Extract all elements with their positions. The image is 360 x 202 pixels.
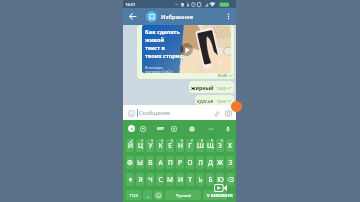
staticText: Б — [208, 175, 213, 184]
button[interactable]: Emoji — [126, 108, 136, 118]
staticText: Р — [178, 158, 182, 167]
staticText: Ж — [217, 158, 223, 167]
staticText: Избранное — [161, 13, 194, 21]
staticText: Ш — [197, 141, 204, 150]
staticText: 4 — [161, 139, 163, 143]
staticText: Щ — [207, 141, 214, 150]
button[interactable]: М — [166, 173, 174, 186]
staticText: А — [158, 158, 163, 167]
button[interactable] — [226, 173, 234, 186]
staticText: Й — [128, 141, 133, 150]
staticText: Д — [208, 158, 213, 167]
button[interactable]: Й — [126, 139, 134, 152]
button[interactable]: Ы — [136, 156, 144, 169]
button[interactable]: Щ — [206, 139, 214, 152]
button[interactable]: Ч — [146, 173, 154, 186]
button[interactable]: Ш — [196, 139, 204, 152]
button[interactable]: Ф — [126, 156, 134, 169]
button[interactable]: Stickers — [138, 124, 147, 133]
button[interactable]: У — [146, 139, 154, 152]
staticText: Используем — [145, 66, 163, 70]
button[interactable]: Back — [126, 10, 139, 23]
staticText: 5 — [171, 139, 173, 143]
button[interactable]: И — [176, 173, 184, 186]
button[interactable]: А — [156, 156, 164, 169]
button[interactable]: More options — [222, 10, 235, 23]
button[interactable]: Х — [226, 139, 234, 152]
staticText: Я — [138, 175, 143, 184]
button[interactable]: . — [143, 190, 152, 200]
staticText: Т — [188, 175, 192, 184]
staticText: Ь — [198, 175, 203, 184]
staticText: 16:45 — [217, 73, 228, 78]
button[interactable]: Е — [166, 139, 174, 152]
staticText: П — [168, 158, 173, 167]
staticText: Л — [198, 158, 203, 167]
staticText: 7 — [191, 139, 193, 143]
staticText: Г — [188, 141, 192, 150]
button[interactable]: Б — [206, 173, 214, 186]
staticText: твоих сторис — [145, 52, 183, 60]
staticText: Русский — [176, 193, 191, 198]
button[interactable]: Attach — [211, 108, 221, 118]
staticText: 16:51 — [125, 2, 136, 8]
staticText: О — [187, 158, 193, 167]
staticText: К — [158, 141, 163, 150]
staticText: 1 — [131, 139, 133, 143]
staticText: ?123 — [129, 193, 138, 198]
button[interactable]: В — [146, 156, 154, 169]
button[interactable]: Р — [176, 156, 184, 169]
button[interactable]: ?123 — [126, 190, 141, 200]
button[interactable]: С — [156, 173, 164, 186]
button[interactable]: Ц — [136, 139, 144, 152]
staticText: Ф — [127, 158, 133, 167]
staticText: З — [218, 141, 222, 150]
button[interactable]: Л — [196, 156, 204, 169]
button[interactable]: Ь — [196, 173, 204, 186]
button[interactable]: О — [186, 156, 194, 169]
button[interactable]: More — [206, 124, 215, 133]
button[interactable]: жирный — [189, 81, 234, 93]
button[interactable]: Clipboard — [169, 124, 178, 133]
staticText: GIF — [157, 126, 164, 132]
staticText: Ц — [138, 141, 143, 150]
staticText: жирный — [191, 84, 214, 91]
staticText: Как сделать — [145, 28, 180, 36]
button[interactable]: Русский — [165, 190, 201, 200]
button[interactable]: Recorder — [231, 101, 242, 112]
staticText: . — [147, 191, 149, 200]
button[interactable] — [126, 173, 134, 186]
staticText: И — [178, 175, 183, 184]
button[interactable]: З — [216, 139, 224, 152]
staticText: 3 — [151, 139, 153, 143]
button[interactable]: Close toolbar — [128, 125, 135, 132]
button[interactable]: Н — [176, 139, 184, 152]
button[interactable]: Video message — [137, 25, 234, 79]
staticText: 15:52 — [217, 99, 226, 104]
button[interactable]: курсив — [195, 95, 234, 105]
button[interactable]: П — [166, 156, 174, 169]
staticText: 9 — [211, 139, 213, 143]
button[interactable]: Д — [206, 156, 214, 169]
button[interactable]: Т — [186, 173, 194, 186]
button[interactable]: Camera — [223, 108, 233, 118]
staticText: Х — [228, 141, 232, 150]
button[interactable]: К — [156, 139, 164, 152]
button[interactable]: Ю — [216, 173, 224, 186]
button[interactable]: Э — [226, 156, 234, 169]
button[interactable]: Я — [136, 173, 144, 186]
button[interactable]: Ж — [216, 156, 224, 169]
button[interactable]: Voice input — [223, 124, 232, 133]
staticText: живой — [145, 36, 165, 44]
staticText: Н — [178, 141, 183, 150]
button[interactable]: Settings — [187, 124, 196, 133]
button[interactable]: Г — [186, 139, 194, 152]
staticText: Э — [228, 158, 233, 167]
button[interactable] — [154, 190, 163, 200]
staticText: 2 — [141, 139, 143, 143]
button[interactable]: Saved Messages — [146, 11, 157, 22]
staticText: Ы — [137, 158, 143, 167]
staticText: 0 — [221, 139, 223, 143]
button[interactable] — [203, 190, 227, 200]
staticText: программу CapCut — [145, 70, 173, 73]
